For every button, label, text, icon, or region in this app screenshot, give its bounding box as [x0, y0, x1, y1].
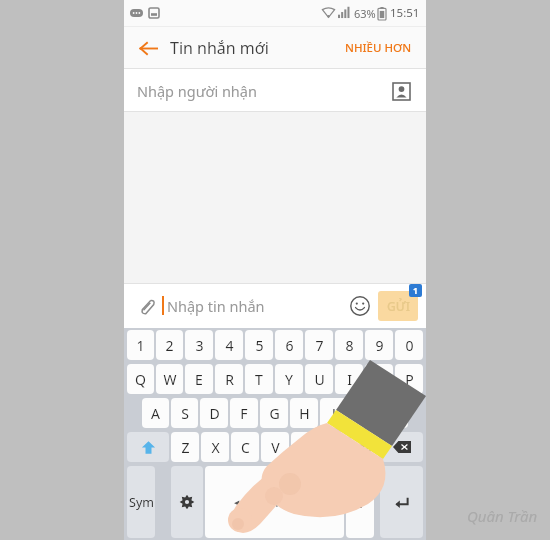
button[interactable]: Shift [127, 432, 169, 462]
button[interactable]: V [261, 432, 289, 462]
button[interactable]: S [171, 398, 198, 428]
button[interactable]: GỬI [378, 291, 418, 321]
button[interactable]: . [346, 466, 374, 538]
button[interactable]: NHIỀU HƠN [341, 34, 416, 62]
staticText: ◀ [234, 499, 240, 507]
staticText: J [332, 404, 336, 423]
button[interactable]: R [215, 364, 243, 394]
button[interactable]: Add contact [389, 79, 413, 103]
staticText: H [299, 404, 310, 423]
staticText: C [241, 438, 250, 457]
staticText: X [211, 438, 220, 457]
staticText: D [209, 404, 220, 423]
button[interactable]: Backspace [381, 432, 423, 462]
button[interactable]: H [290, 398, 318, 428]
staticText: NHIỀU HƠN [345, 40, 412, 56]
staticText: F [240, 404, 248, 423]
staticText: 1 [136, 336, 145, 355]
button[interactable]: P [395, 364, 423, 394]
staticText: English(US) [245, 495, 304, 510]
button[interactable]: Settings [171, 466, 203, 538]
staticText: 5 [255, 336, 264, 355]
button[interactable]: N [321, 432, 349, 462]
button[interactable]: Z [171, 432, 199, 462]
staticText: P [405, 370, 414, 389]
button[interactable]: 5 [245, 330, 273, 360]
staticText: 15:51 [390, 5, 420, 21]
button[interactable]: 0 [395, 330, 423, 360]
staticText: 3 [195, 336, 204, 355]
staticText: 7 [315, 336, 324, 355]
button[interactable]: 9 [365, 330, 393, 360]
staticText: 8 [345, 336, 354, 355]
button[interactable]: 2 [156, 330, 183, 360]
staticText: 63% [354, 6, 376, 21]
button[interactable]: ◀ [205, 466, 344, 538]
button[interactable]: E [185, 364, 213, 394]
staticText: S [181, 404, 189, 423]
button[interactable]: 7 [305, 330, 333, 360]
staticText: 9 [375, 336, 384, 355]
staticText: R [225, 370, 234, 389]
staticText: T [255, 370, 263, 389]
button[interactable]: I [335, 364, 363, 394]
staticText: Sym [129, 494, 154, 511]
button[interactable]: Attach [132, 292, 160, 320]
button[interactable]: 6 [275, 330, 303, 360]
staticText: Nhập tin nhắn [167, 296, 265, 316]
button[interactable]: Emoji [346, 292, 374, 320]
button[interactable]: X [201, 432, 229, 462]
button[interactable]: Enter [380, 466, 423, 538]
staticText: 0 [405, 336, 414, 355]
staticText: Tin nhắn mới [170, 37, 269, 59]
button[interactable]: M [351, 432, 379, 462]
staticText: I [347, 370, 352, 389]
button[interactable]: C [231, 432, 259, 462]
button[interactable]: B [291, 432, 319, 462]
staticText: M [359, 438, 372, 457]
staticText: 4 [225, 336, 234, 355]
staticText: U [314, 370, 325, 389]
button[interactable]: A [142, 398, 169, 428]
staticText: 6 [285, 336, 294, 355]
button[interactable]: U [305, 364, 333, 394]
staticText: 2 [165, 336, 174, 355]
staticText: Nhập người nhận [137, 81, 257, 101]
button[interactable]: D [200, 398, 228, 428]
staticText: A [151, 404, 160, 423]
button[interactable]: Sym [127, 466, 155, 538]
staticText: Y [285, 370, 293, 389]
button[interactable]: F [230, 398, 258, 428]
button[interactable]: Y [275, 364, 303, 394]
button[interactable]: 1 [127, 330, 154, 360]
button[interactable]: W [156, 364, 183, 394]
staticText: Quân Trần [467, 506, 538, 526]
staticText: V [271, 438, 280, 457]
button[interactable]: K [350, 398, 378, 428]
staticText: Z [181, 438, 190, 457]
button[interactable]: 3 [185, 330, 213, 360]
button[interactable]: Back [134, 34, 162, 62]
button[interactable]: L [380, 398, 408, 428]
button[interactable]: Q [127, 364, 154, 394]
staticText: Q [135, 370, 146, 389]
staticText: W [163, 370, 177, 389]
staticText: 1 [413, 285, 418, 297]
staticText: G [269, 404, 280, 423]
button[interactable]: 8 [335, 330, 363, 360]
button[interactable]: T [245, 364, 273, 394]
button[interactable]: G [260, 398, 288, 428]
staticText: GỬI [387, 298, 410, 314]
button[interactable]: J [320, 398, 348, 428]
button[interactable]: O [365, 364, 393, 394]
button[interactable]: 4 [215, 330, 243, 360]
staticText: . [358, 492, 363, 512]
staticText: E [195, 370, 203, 389]
